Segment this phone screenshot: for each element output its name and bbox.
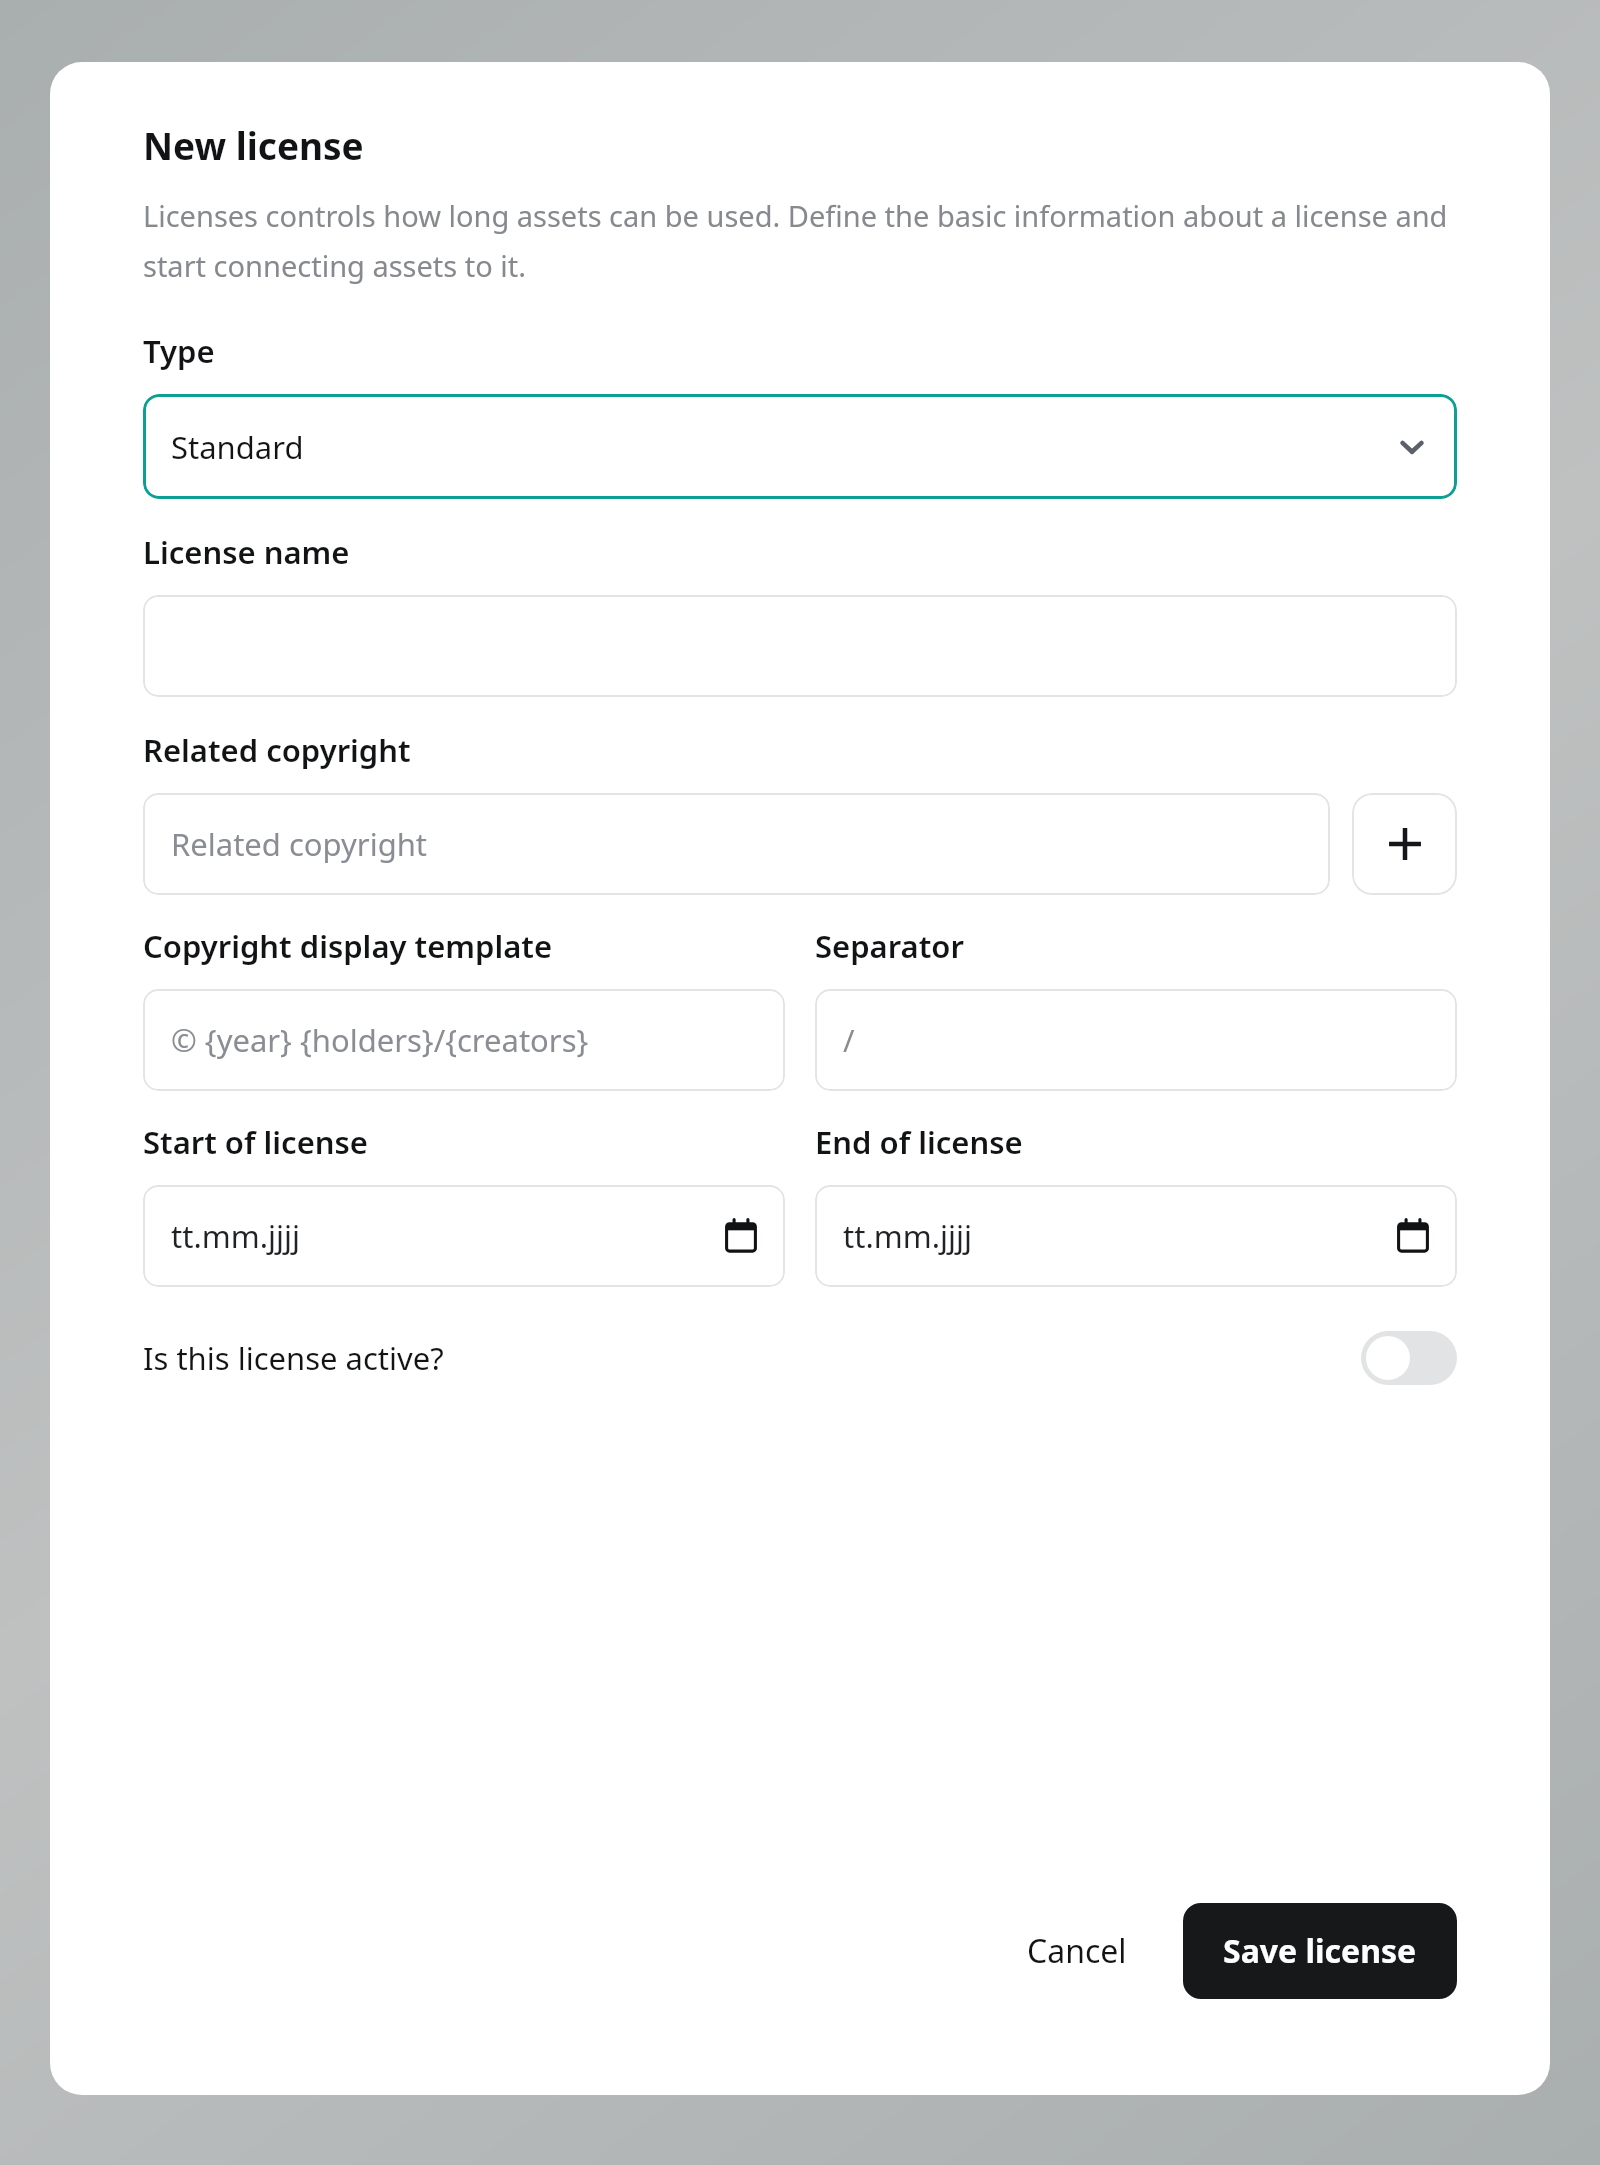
button[interactable]: Add related copyright bbox=[1352, 793, 1457, 895]
staticText: Cancel bbox=[1027, 1929, 1127, 1973]
button[interactable]: tt.mm.jjjj bbox=[143, 1185, 785, 1287]
staticText: Is this license active? bbox=[143, 1337, 1361, 1379]
button[interactable] bbox=[143, 595, 1457, 697]
button[interactable]: Standard bbox=[143, 394, 1457, 499]
staticText: © {year} {holders}/{creators} bbox=[171, 1019, 589, 1061]
button[interactable]: tt.mm.jjjj bbox=[815, 1185, 1457, 1287]
button[interactable]: / bbox=[815, 989, 1457, 1091]
staticText: End of license bbox=[815, 1121, 1023, 1163]
button[interactable]: Save license bbox=[1183, 1903, 1457, 1999]
staticText: / bbox=[843, 1019, 855, 1061]
button[interactable]: © {year} {holders}/{creators} bbox=[143, 989, 785, 1091]
staticText: Standard bbox=[171, 426, 1395, 468]
staticText: Related copyright bbox=[143, 729, 411, 771]
other: Pick date bbox=[1395, 1218, 1431, 1254]
staticText: Licenses controls how long assets can be… bbox=[143, 196, 1457, 286]
staticText: Separator bbox=[815, 925, 964, 967]
staticText: Type bbox=[143, 330, 215, 372]
staticText: tt.mm.jjjj bbox=[843, 1215, 1395, 1257]
button[interactable]: Related copyright bbox=[143, 793, 1330, 895]
staticText: Start of license bbox=[143, 1121, 368, 1163]
staticText: New license bbox=[143, 120, 364, 170]
staticText: Copyright display template bbox=[143, 925, 553, 967]
staticText: tt.mm.jjjj bbox=[171, 1215, 723, 1257]
staticText: License name bbox=[143, 531, 350, 573]
staticText: Related copyright bbox=[171, 823, 428, 865]
button[interactable]: Is this license active toggle bbox=[1361, 1331, 1457, 1385]
staticText: Save license bbox=[1223, 1929, 1417, 1973]
button[interactable]: Cancel bbox=[1001, 1911, 1153, 1991]
other: Pick date bbox=[723, 1218, 759, 1254]
